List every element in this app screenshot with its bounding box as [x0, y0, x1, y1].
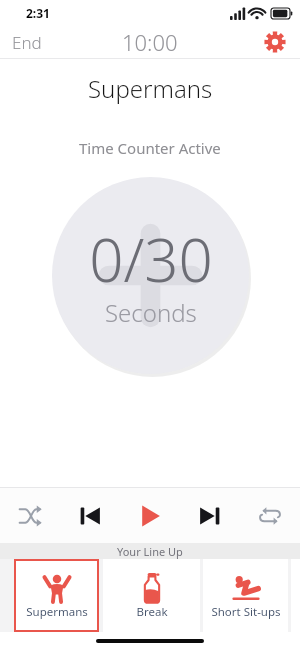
button[interactable]: Shuffle: [0, 488, 60, 543]
button[interactable]: Settings: [258, 26, 292, 58]
button[interactable]: End: [0, 27, 54, 58]
staticText: Supermans: [26, 604, 88, 620]
staticText: End: [12, 31, 42, 54]
button[interactable]: Supermans: [14, 559, 99, 632]
button[interactable]: Short Sit-ups: [203, 559, 288, 632]
button[interactable]: Next: [180, 488, 240, 543]
staticText: 2:31: [26, 5, 50, 21]
button[interactable]: Repeat: [240, 488, 300, 543]
button[interactable]: Play: [120, 488, 180, 543]
staticText: Time Counter Active: [79, 138, 221, 158]
staticText: Seconds: [105, 296, 197, 329]
staticText: 0/30: [89, 218, 213, 300]
staticText: Supermans: [88, 72, 213, 105]
button[interactable]: Previous: [60, 488, 120, 543]
staticText: Break: [136, 604, 168, 620]
staticText: Your Line Up: [117, 544, 183, 559]
staticText: 10:00: [122, 27, 178, 57]
button[interactable]: Break: [103, 559, 200, 632]
staticText: Short Sit-ups: [211, 604, 281, 620]
